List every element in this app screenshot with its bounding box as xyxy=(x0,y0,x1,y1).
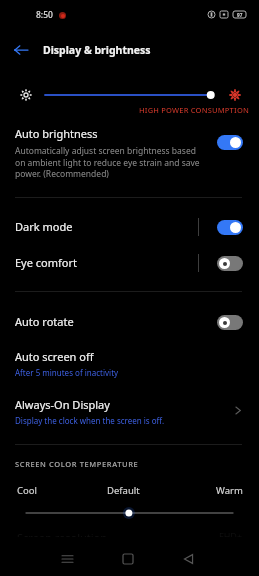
staticText: Dark mode xyxy=(15,219,73,234)
button[interactable]: Auto brightness xyxy=(0,126,259,180)
staticText: HIGH POWER CONSUMPTION xyxy=(139,105,249,115)
staticText: Eye comfort xyxy=(15,255,77,270)
button[interactable]: Toggle xyxy=(0,306,259,338)
staticText: Auto rotate xyxy=(15,314,74,329)
staticText: 8:50 xyxy=(36,9,53,21)
staticText: Cool xyxy=(17,484,37,497)
button[interactable]: Toggle xyxy=(217,135,243,150)
staticText: Auto brightness xyxy=(15,126,98,141)
staticText: Display the clock when the screen is off… xyxy=(15,415,165,426)
button[interactable]: Toggle xyxy=(217,220,243,235)
button[interactable]: Home xyxy=(97,542,158,576)
button[interactable]: Toggle xyxy=(217,315,243,330)
button[interactable]: Back xyxy=(10,39,32,61)
staticText: Default xyxy=(107,484,140,497)
staticText: Screen resolution xyxy=(17,530,108,537)
button[interactable]: Back xyxy=(158,542,219,576)
button[interactable]: Toggle xyxy=(0,247,259,279)
staticText: SCREEN COLOR TEMPERATURE xyxy=(15,459,139,469)
staticText: Display & brightness xyxy=(43,43,151,57)
staticText: After 5 minutes of inactivity xyxy=(15,367,119,378)
button[interactable]: Auto screen off xyxy=(0,345,259,379)
button[interactable]: Always-On Display xyxy=(0,393,259,427)
button[interactable]: Recent apps xyxy=(37,542,97,576)
staticText: Auto screen off xyxy=(15,349,94,364)
button[interactable]: Toggle xyxy=(0,211,259,243)
staticText: Warm xyxy=(216,484,243,497)
staticText: FHD+ xyxy=(219,530,243,537)
button[interactable]: Toggle xyxy=(217,256,243,271)
staticText: Always-On Display xyxy=(15,397,110,412)
staticText: Automatically adjust screen brightness b… xyxy=(15,145,203,180)
staticText: 97 xyxy=(237,12,243,18)
